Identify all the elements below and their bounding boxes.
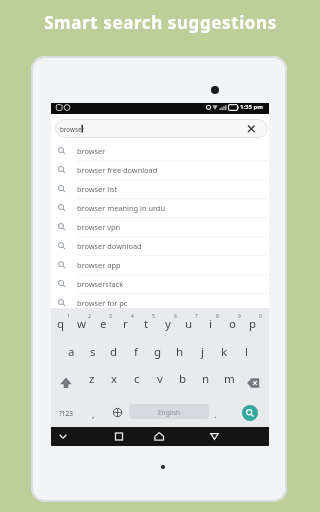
staticText: d	[110, 344, 118, 360]
staticText: c	[134, 371, 140, 387]
staticText: browser meaning in urdu	[77, 203, 165, 213]
staticText: browser free download	[77, 165, 158, 175]
staticText: browser download	[77, 241, 142, 251]
staticText: l	[245, 344, 248, 360]
button[interactable]	[51, 142, 269, 161]
staticText: p	[249, 316, 257, 332]
button[interactable]	[107, 427, 131, 446]
staticText: 2	[88, 313, 91, 320]
staticText: 9	[238, 313, 241, 320]
staticText: 0	[259, 313, 262, 320]
staticText: 1:35 pm	[240, 103, 264, 111]
staticText: ?123	[59, 409, 73, 418]
staticText: b	[179, 371, 187, 387]
button[interactable]	[242, 405, 258, 421]
staticText: t	[144, 316, 149, 332]
staticText: 7	[195, 313, 198, 320]
staticText: h	[176, 344, 184, 360]
staticText: .	[214, 408, 217, 420]
staticText: m	[224, 371, 235, 387]
staticText: i	[209, 316, 212, 332]
button[interactable]	[129, 404, 209, 419]
staticText: browser	[77, 146, 106, 156]
staticText: n	[202, 371, 210, 387]
staticText: 1	[67, 313, 70, 320]
button[interactable]	[51, 180, 269, 199]
button[interactable]	[55, 119, 268, 138]
staticText: browser for pc	[77, 298, 128, 308]
staticText: j	[201, 344, 204, 360]
staticText: a	[68, 344, 75, 360]
staticText: w	[77, 316, 87, 332]
staticText: f	[134, 344, 138, 360]
staticText: English	[158, 408, 181, 417]
staticText: s	[90, 344, 96, 360]
button[interactable]	[52, 427, 76, 446]
staticText: q	[57, 316, 65, 332]
button[interactable]	[203, 427, 227, 446]
staticText: o	[229, 316, 236, 332]
staticText: v	[157, 371, 163, 387]
staticText: 5	[152, 313, 155, 320]
staticText: 4	[131, 313, 134, 320]
button[interactable]	[51, 294, 269, 313]
staticText: browserstack	[77, 279, 124, 289]
button[interactable]	[51, 199, 269, 218]
staticText: browser	[60, 125, 85, 134]
staticText: u	[185, 316, 193, 332]
button[interactable]	[51, 256, 269, 275]
staticText: r	[123, 316, 128, 332]
staticText: browser list	[77, 184, 118, 194]
staticText: 6	[174, 313, 177, 320]
staticText: e	[100, 316, 107, 332]
staticText: z	[89, 371, 95, 387]
button[interactable]	[51, 237, 269, 256]
staticText: y	[165, 316, 171, 332]
staticText: x	[111, 371, 118, 387]
button[interactable]	[149, 427, 173, 446]
button[interactable]	[51, 218, 269, 237]
staticText: k	[221, 344, 228, 360]
staticText: ,	[92, 408, 95, 420]
staticText: 8	[216, 313, 219, 320]
staticText: browser app	[77, 260, 121, 270]
staticText: browser vpn	[77, 222, 121, 232]
button[interactable]	[51, 275, 269, 294]
staticText: g	[154, 344, 162, 360]
button[interactable]	[51, 161, 269, 180]
staticText: Smart search suggestions	[44, 11, 277, 34]
staticText: 3	[109, 313, 112, 320]
